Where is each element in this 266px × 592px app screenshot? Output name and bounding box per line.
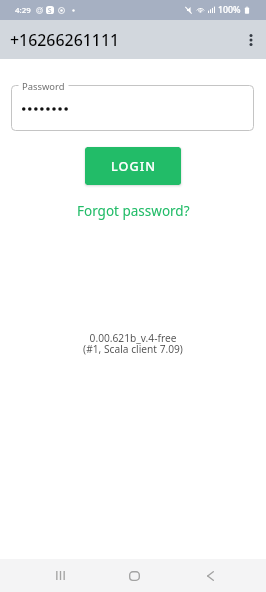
button[interactable]: Forgot password? [69,200,198,222]
staticText: Forgot password? [77,202,190,220]
staticText: LOGIN [111,158,156,175]
staticText: S [48,6,52,14]
button[interactable]: More options [232,23,266,57]
button[interactable]: Home [112,559,156,592]
staticText: 0.00.621b_v.4-free (#1, Scala client 7.0… [83,331,183,356]
button[interactable]: Recent apps [38,559,82,592]
staticText: 100% [218,4,241,16]
staticText: Password [22,80,65,93]
button[interactable]: Back [188,559,232,592]
button[interactable]: LOGIN [85,147,181,185]
staticText: +16266261111 [10,29,120,51]
staticText: 4:29 [15,5,31,16]
